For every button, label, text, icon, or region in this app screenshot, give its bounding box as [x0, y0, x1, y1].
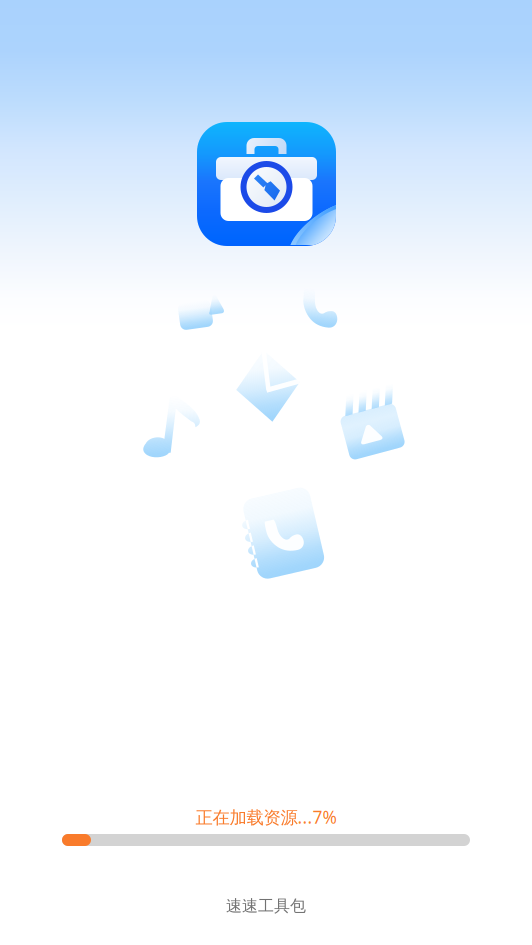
staticText: 速速工具包 — [226, 896, 306, 916]
staticText: 正在加载资源...7% — [195, 805, 336, 828]
